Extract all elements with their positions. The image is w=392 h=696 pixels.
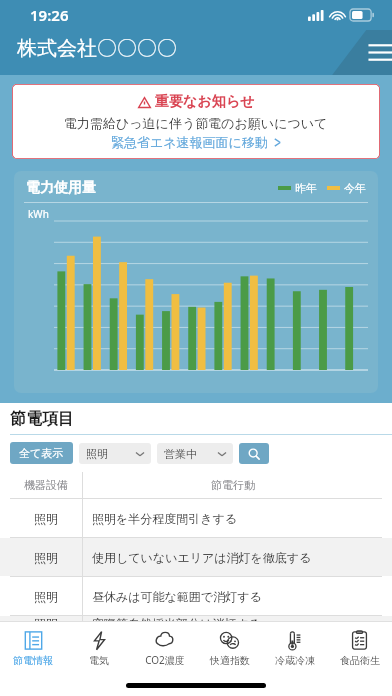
button[interactable]: 照明: [0, 499, 392, 537]
staticText: 緊急省エネ速報画面に移動: [111, 134, 268, 150]
staticText: kWh: [28, 207, 49, 221]
button[interactable]: 照明: [0, 577, 392, 615]
button[interactable]: CO2濃度: [132, 622, 197, 674]
staticText: 照明: [34, 616, 58, 621]
button[interactable]: 節電情報: [0, 622, 66, 674]
staticText: 節電情報: [13, 654, 53, 667]
staticText: 機器設備: [24, 478, 68, 492]
staticText: 冷蔵冷凍: [275, 654, 315, 667]
staticText: 照明を半分程度間引きする: [92, 511, 238, 526]
staticText: 節電行動: [211, 478, 255, 492]
staticText: 快適指数: [210, 654, 250, 667]
button[interactable]: 冷蔵冷凍: [262, 622, 327, 674]
staticText: 照明: [34, 589, 58, 604]
button[interactable]: 全て表示: [10, 442, 73, 464]
staticText: 照明: [86, 447, 108, 461]
staticText: 営業中: [164, 447, 197, 461]
button[interactable]: 照明: [0, 616, 392, 621]
staticText: 株式会社〇〇〇〇: [17, 36, 177, 61]
staticText: 今年: [344, 181, 366, 195]
staticText: 使用していないエリアは消灯を徹底する: [92, 550, 312, 565]
staticText: 照明: [34, 550, 58, 565]
staticText: CO2濃度: [145, 653, 185, 667]
staticText: 電力需給ひっ迫に伴う節電のお願いについて: [64, 115, 328, 131]
button[interactable]: 電気: [66, 622, 132, 674]
button[interactable]: 営業中: [157, 443, 233, 464]
staticText: 電力使用量: [26, 179, 96, 197]
staticText: 重要なお知らせ: [155, 93, 255, 111]
button[interactable]: Menu: [300, 30, 392, 75]
staticText: 昨年: [295, 181, 317, 195]
staticText: 昼休みは可能な範囲で消灯する: [92, 589, 262, 604]
button[interactable]: 緊急省エネ速報画面に移動: [111, 134, 282, 150]
staticText: 19:26: [30, 5, 69, 25]
staticText: 窓際等自然採光部分は消灯する: [92, 616, 261, 621]
button[interactable]: 食品衛生: [327, 622, 392, 674]
button[interactable]: 照明: [0, 538, 392, 576]
button[interactable]: 快適指数: [197, 622, 262, 674]
staticText: 節電項目: [10, 409, 74, 429]
staticText: 電気: [89, 654, 109, 667]
staticText: 照明: [34, 511, 58, 526]
staticText: 食品衛生: [340, 654, 380, 667]
button[interactable]: 照明: [79, 443, 151, 464]
staticText: 全て表示: [19, 446, 64, 460]
button[interactable]: Search: [239, 443, 269, 464]
